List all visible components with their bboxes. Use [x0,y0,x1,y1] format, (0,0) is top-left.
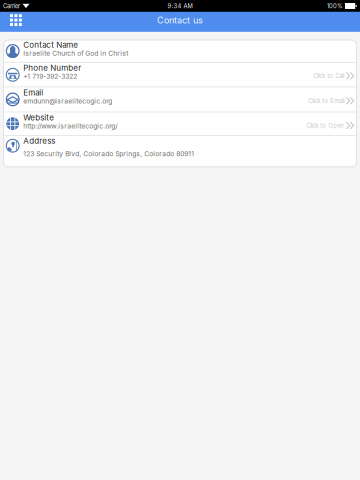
staticText: 9:34 AM [167,2,192,10]
staticText: emdunn@israelitecogic.org [23,97,112,105]
button[interactable]: Contact Name [3,40,356,62]
staticText: Website [23,113,54,122]
staticText: Email [23,88,43,97]
button[interactable]: Phone Number [3,63,356,87]
staticText: Address [23,136,55,146]
staticText: Click to Email [308,97,344,104]
staticText: Contact Name [23,40,78,50]
staticText: Phone Number [23,63,81,73]
staticText: http://www.israelitecogic.org/ [23,122,117,130]
staticText: Click to Call [313,72,344,79]
staticText: +1 719-392-3322 [23,72,77,80]
staticText: Israelite Church of God in Christ [23,49,128,57]
button[interactable]: Address [3,136,356,167]
button[interactable]: Email [3,87,356,112]
staticText: Carrier [3,2,20,10]
button[interactable]: Menu [0,12,30,32]
staticText: Contact us [157,15,203,26]
button[interactable]: Website [3,112,356,135]
staticText: Click to Open [306,122,344,129]
staticText: 123 Security Blvd, Colorado Springs, Col… [23,150,194,158]
staticText: 100% [327,2,343,10]
